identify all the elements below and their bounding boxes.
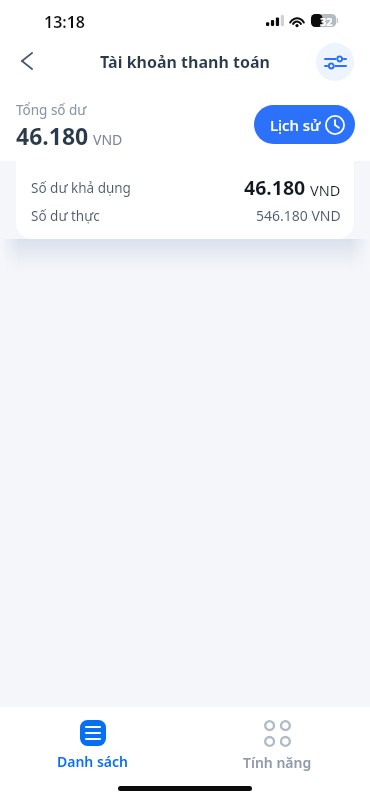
staticText: 546.180 VND <box>256 206 341 225</box>
staticText: 46.180 <box>244 174 306 201</box>
staticText: Danh sách <box>57 752 128 771</box>
staticText: Lịch sử <box>270 115 321 135</box>
staticText: Tổng số dư <box>16 101 87 119</box>
button[interactable]: Lịch sử <box>254 105 355 144</box>
staticText: 13:18 <box>44 11 86 33</box>
staticText: Số dư thực <box>31 207 100 225</box>
button[interactable]: Back <box>9 43 45 79</box>
staticText: 32 <box>320 14 333 27</box>
button[interactable]: Danh sách <box>0 716 185 775</box>
staticText: VND <box>93 130 123 149</box>
staticText: VND <box>310 180 341 200</box>
staticText: Tài khoản thanh toán <box>100 51 270 73</box>
staticText: 46.180 <box>16 120 89 151</box>
staticText: Số dư khả dụng <box>31 179 131 197</box>
button[interactable]: Filter settings <box>316 43 354 81</box>
staticText: Tính năng <box>243 753 312 772</box>
button[interactable]: Tính năng <box>185 716 370 776</box>
